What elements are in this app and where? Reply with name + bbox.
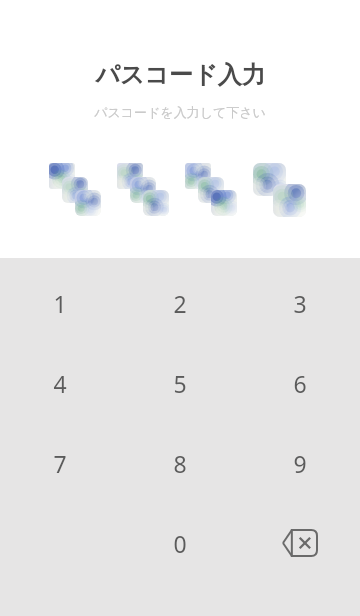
staticText: 4: [53, 368, 67, 399]
button[interactable]: 9: [240, 423, 360, 503]
staticText: 2: [173, 288, 187, 319]
staticText: 5: [173, 368, 187, 399]
button[interactable]: 0: [120, 503, 240, 583]
staticText: 6: [293, 368, 307, 399]
staticText: 0: [173, 528, 187, 559]
button[interactable]: Backspace: [240, 503, 360, 583]
staticText: 9: [293, 448, 307, 479]
button[interactable]: 8: [120, 423, 240, 503]
button[interactable]: 1: [0, 263, 120, 343]
button[interactable]: 2: [120, 263, 240, 343]
button[interactable]: 6: [240, 343, 360, 423]
button[interactable]: 5: [120, 343, 240, 423]
staticText: パスコード入力: [95, 60, 266, 90]
staticText: 1: [53, 288, 67, 319]
button[interactable]: 4: [0, 343, 120, 423]
staticText: 7: [53, 448, 67, 479]
staticText: パスコードを入力して下さい: [94, 104, 266, 120]
staticText: 3: [293, 288, 307, 319]
staticText: 8: [173, 448, 187, 479]
button[interactable]: 7: [0, 423, 120, 503]
button[interactable]: 3: [240, 263, 360, 343]
